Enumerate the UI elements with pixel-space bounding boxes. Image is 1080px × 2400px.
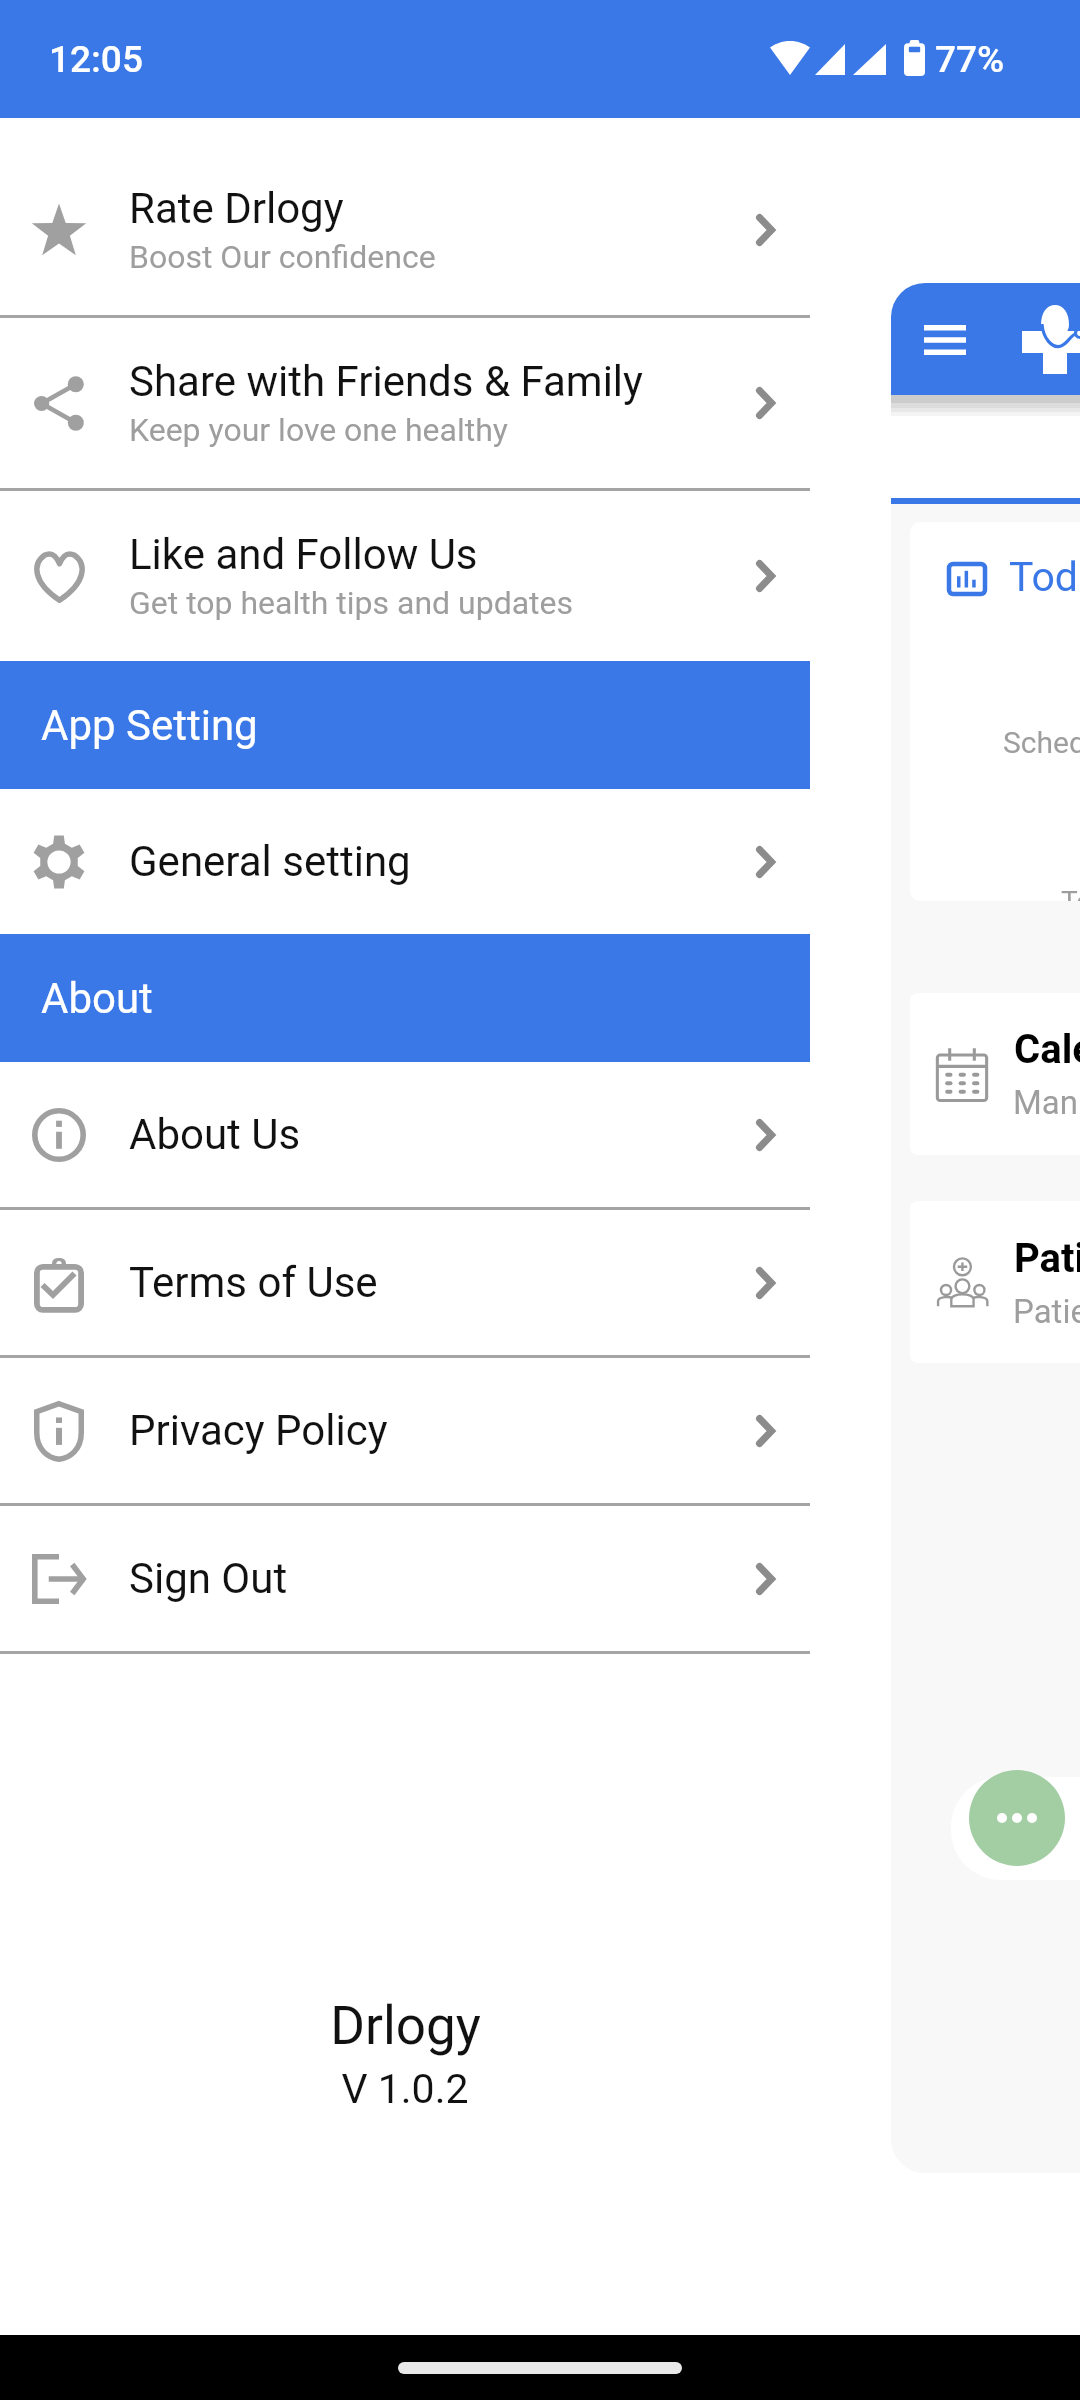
staticText: Cale (1014, 1026, 1080, 1073)
staticText: Toda (1009, 553, 1080, 601)
button[interactable]: General setting (0, 789, 810, 934)
staticText: Pati (1014, 1235, 1080, 1282)
staticText: Sched (1003, 725, 1080, 760)
staticText: Drlogy (330, 1995, 481, 2057)
button[interactable]: Privacy Policy (0, 1358, 810, 1503)
staticText: General setting (129, 837, 411, 886)
staticText: 12:05 (49, 38, 143, 81)
staticText: About (41, 974, 153, 1023)
staticText: Keep your love one healthy (129, 411, 508, 449)
staticText: Like and Follow Us (129, 530, 478, 579)
staticText: Sign Out (129, 1554, 288, 1603)
button[interactable]: Terms of Use (0, 1210, 810, 1355)
staticText: To (1061, 885, 1080, 901)
button[interactable]: Share with Friends & Family (0, 318, 810, 488)
staticText: Terms of Use (129, 1258, 378, 1307)
staticText: Privacy Policy (129, 1406, 388, 1455)
button[interactable]: More options (969, 1770, 1065, 1866)
staticText: Man (1013, 1083, 1078, 1122)
staticText: Share with Friends & Family (129, 357, 643, 406)
button[interactable]: Sign Out (0, 1506, 810, 1651)
button[interactable]: Rate Drlogy (0, 145, 810, 315)
staticText: Boost Our confidence (129, 238, 436, 276)
staticText: V 1.0.2 (341, 2065, 469, 2113)
button[interactable]: Like and Follow Us (0, 491, 810, 661)
staticText: Rate Drlogy (129, 184, 344, 233)
staticText: App Setting (41, 701, 258, 750)
staticText: 77% (935, 38, 1005, 81)
staticText: About Us (129, 1110, 301, 1159)
staticText: Get top health tips and updates (129, 584, 574, 622)
staticText: Patie (1013, 1292, 1080, 1331)
button[interactable]: About Us (0, 1062, 810, 1207)
